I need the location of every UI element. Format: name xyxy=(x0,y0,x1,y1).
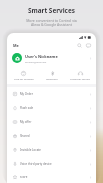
staticText: Bluetooth xyxy=(46,77,58,80)
staticText: Voice third party device xyxy=(20,162,52,166)
button[interactable]: score xyxy=(7,171,96,183)
staticText: Shared xyxy=(20,134,30,138)
button[interactable]: My offer xyxy=(7,115,96,129)
staticText: Smart Services xyxy=(28,6,75,15)
staticText: customer service xyxy=(70,77,90,80)
staticText: My offer xyxy=(20,120,32,124)
button[interactable]: Flash sale xyxy=(7,101,96,115)
button[interactable]: customer service xyxy=(66,71,94,80)
button[interactable]: Messages xyxy=(86,43,91,48)
button[interactable]: card for problem xyxy=(9,71,38,80)
staticText: Flash sale xyxy=(20,106,34,110)
staticText: User's Nickname xyxy=(25,54,58,59)
staticText: account@mail.com xyxy=(25,60,47,63)
button[interactable]: My Order xyxy=(7,87,96,101)
staticText: My Order xyxy=(20,92,33,96)
button[interactable]: Shared xyxy=(7,129,96,143)
staticText: score xyxy=(20,175,28,179)
button[interactable]: User's Nickname xyxy=(7,52,96,64)
button[interactable]: Bluetooth xyxy=(38,71,66,80)
staticText: card for problem xyxy=(14,77,34,80)
staticText: Invisible Locate xyxy=(20,148,41,152)
staticText: Me xyxy=(13,43,19,48)
button[interactable]: Invisible Locate xyxy=(7,143,96,157)
staticText: More convenient to Control via Alexa & G… xyxy=(26,18,77,27)
button[interactable]: Voice third party device xyxy=(7,157,96,171)
button[interactable]: Scan code xyxy=(77,43,82,48)
